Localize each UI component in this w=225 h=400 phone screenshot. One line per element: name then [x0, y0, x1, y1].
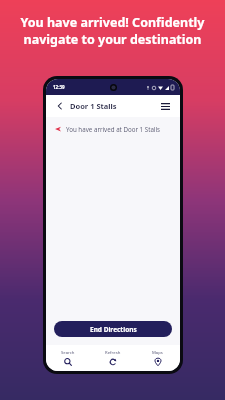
staticText: You have arrived at Door 1 Stalls	[66, 125, 161, 133]
button[interactable]: You have arrived at Door 1 Stalls	[46, 117, 180, 141]
button[interactable]: Refresh	[90, 345, 135, 371]
staticText: 12:39	[53, 84, 65, 90]
button[interactable]: Menu	[158, 99, 172, 113]
button[interactable]: Search	[46, 345, 90, 371]
staticText: Search	[61, 350, 75, 356]
staticText: Maps	[152, 350, 163, 356]
staticText: Refresh	[105, 350, 121, 356]
staticText: You have arrived! Confidently navigate t…	[12, 14, 213, 48]
button[interactable]: Maps	[135, 345, 180, 371]
staticText: End Directions	[90, 325, 137, 334]
button[interactable]: End Directions	[54, 321, 172, 337]
staticText: Door 1 Stalls	[70, 101, 117, 111]
button[interactable]: Back	[54, 100, 66, 112]
